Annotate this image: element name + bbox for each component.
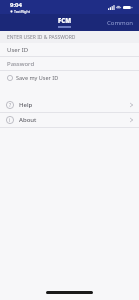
staticText: ? <box>9 102 12 109</box>
staticText: FCM <box>58 17 71 25</box>
staticText: TextFlight <box>14 9 30 14</box>
staticText: About <box>19 116 37 124</box>
staticText: ENTER USER ID & PASSWORD <box>7 34 76 41</box>
button[interactable]: Password <box>0 57 139 70</box>
button[interactable]: Common <box>101 16 139 30</box>
staticText: Save my User ID <box>16 74 59 81</box>
button[interactable]: User ID <box>0 43 139 56</box>
button[interactable]: Save my User ID <box>0 71 139 84</box>
button[interactable]: FCM logo <box>55 15 74 30</box>
staticText: i <box>9 117 11 124</box>
staticText: Password <box>7 60 35 68</box>
button[interactable]: ? <box>0 98 139 112</box>
staticText: User ID <box>7 46 29 54</box>
staticText: Help <box>19 101 33 109</box>
staticText: 9:04 <box>10 1 22 9</box>
staticText: Common <box>107 19 133 27</box>
button[interactable]: i <box>0 113 139 127</box>
